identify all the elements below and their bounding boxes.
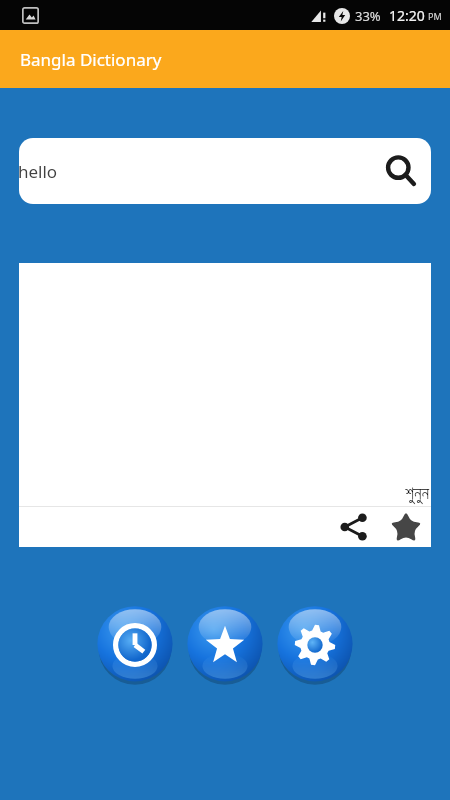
button[interactable]: Search (378, 148, 424, 194)
staticText: শুনুন (405, 485, 429, 502)
staticText: 33% (355, 7, 381, 25)
button[interactable]: Settings (275, 605, 355, 685)
button[interactable]: Favourites (185, 605, 265, 685)
staticText: Bangla Dictionary (20, 48, 162, 71)
button[interactable]: hello (19, 138, 431, 204)
staticText: 12:20 (389, 6, 425, 25)
staticText: hello (19, 160, 58, 183)
button[interactable]: Share (334, 507, 374, 547)
staticText: PM (428, 10, 442, 22)
button[interactable]: শুনুন (405, 485, 429, 502)
button[interactable]: Add to favourites (386, 507, 426, 547)
button[interactable]: History (95, 605, 175, 685)
